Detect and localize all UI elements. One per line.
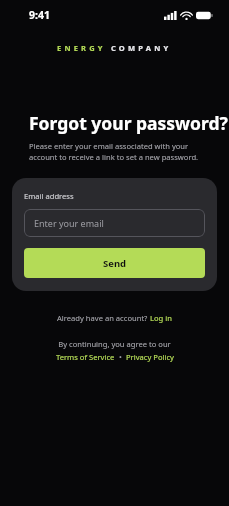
staticText: • bbox=[115, 352, 126, 362]
staticText: COMPANY bbox=[111, 43, 172, 53]
staticText: Terms of Service bbox=[56, 352, 115, 362]
button[interactable]: Privacy Policy bbox=[126, 352, 174, 362]
staticText: 9:41 bbox=[29, 8, 50, 22]
staticText: Already have an account? bbox=[57, 313, 150, 323]
staticText: Email address bbox=[24, 191, 74, 201]
staticText: Enter your email bbox=[34, 217, 104, 229]
button[interactable]: Enter your email bbox=[24, 209, 205, 237]
button[interactable]: Send bbox=[24, 248, 205, 278]
staticText: Forgot your password? bbox=[29, 111, 228, 135]
button[interactable]: Terms of Service bbox=[56, 352, 115, 362]
staticText: Please enter your email associated with … bbox=[29, 141, 205, 162]
staticText: Privacy Policy bbox=[126, 352, 174, 362]
staticText: By continuing, you agree to our bbox=[0, 339, 229, 349]
other: Cellular signal bbox=[164, 11, 177, 20]
button[interactable]: Log in bbox=[150, 313, 172, 323]
other: Wi-Fi bbox=[181, 11, 192, 20]
staticText: ENERGY bbox=[57, 43, 106, 53]
staticText: Log in bbox=[150, 313, 172, 323]
staticText: Send bbox=[103, 257, 127, 270]
other: Battery bbox=[196, 11, 213, 20]
